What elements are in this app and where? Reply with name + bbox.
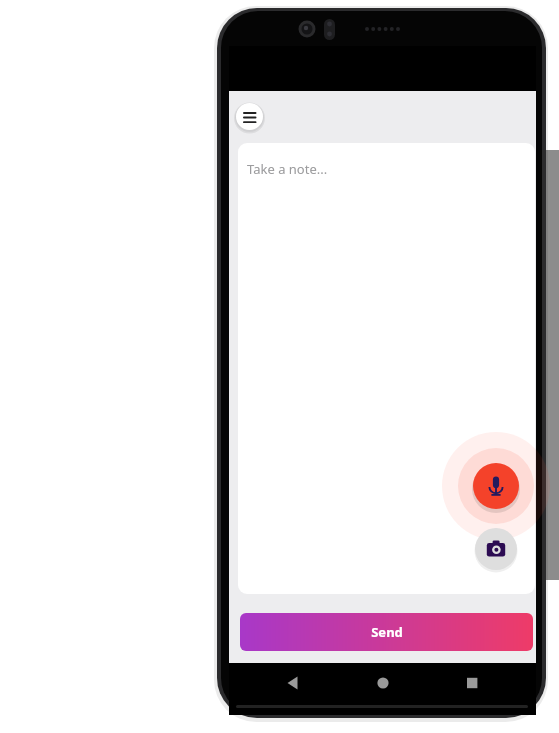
button[interactable]: Recent apps xyxy=(454,665,490,701)
button[interactable]: Home xyxy=(365,665,401,701)
button[interactable]: Open navigation menu xyxy=(236,103,263,130)
button[interactable] xyxy=(238,143,535,594)
staticText: Take a note... xyxy=(247,160,328,178)
button[interactable]: Record voice note xyxy=(473,463,519,509)
button[interactable]: Take photo xyxy=(475,528,517,570)
button[interactable]: Send xyxy=(240,613,533,651)
staticText: Send xyxy=(371,623,403,641)
button[interactable]: Back xyxy=(275,665,311,701)
